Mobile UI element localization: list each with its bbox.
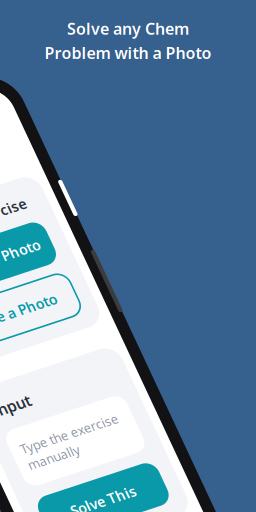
staticText: Problem with a Photo [44,42,211,63]
staticText: Solve any Chem [67,18,189,39]
